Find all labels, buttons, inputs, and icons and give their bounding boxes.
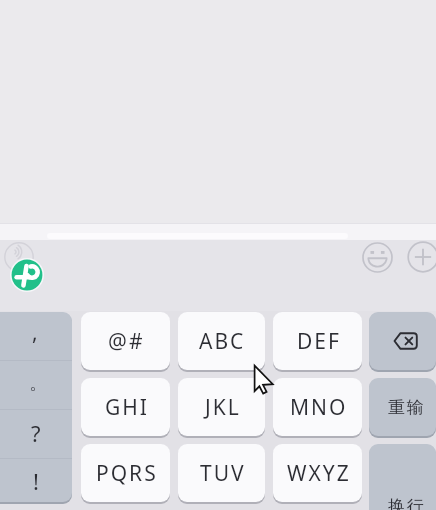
button[interactable]: , [0,312,72,360]
button[interactable]: Backspace [369,312,436,370]
button[interactable]: More options [407,241,436,273]
button[interactable]: ABC [178,312,265,370]
staticText: TUV [200,459,246,488]
staticText: 换行 [388,496,426,510]
button[interactable]: Input method menu [10,258,44,292]
staticText: ? [31,418,41,448]
button[interactable]: Emoji [362,242,393,273]
staticText: , [32,318,38,347]
staticText: @# [108,327,145,356]
button[interactable]: WXYZ [273,444,362,502]
button[interactable]: JKL [178,378,265,436]
button[interactable]: ? [0,410,72,458]
button[interactable]: PQRS [81,444,170,502]
staticText: JKL [205,393,241,422]
staticText: 重输 [388,397,426,418]
staticText: GHI [105,393,149,422]
button[interactable]: 。 [0,361,72,409]
button[interactable]: DEF [273,312,362,370]
staticText: ! [33,466,39,496]
button[interactable]: GHI [81,378,170,436]
button[interactable]: ! [0,459,72,502]
staticText: PQRS [96,459,158,488]
staticText: MNO [290,393,348,422]
button[interactable]: 重输 [369,378,436,436]
staticText: 。 [29,372,47,395]
button[interactable]: 换行 [369,444,436,510]
staticText: DEF [297,327,341,356]
staticText: ABC [199,327,246,356]
button[interactable]: TUV [178,444,265,502]
button[interactable]: MNO [273,378,362,436]
button[interactable]: @# [81,312,170,370]
button[interactable]: Voice input [4,242,34,272]
staticText: WXYZ [287,459,351,488]
